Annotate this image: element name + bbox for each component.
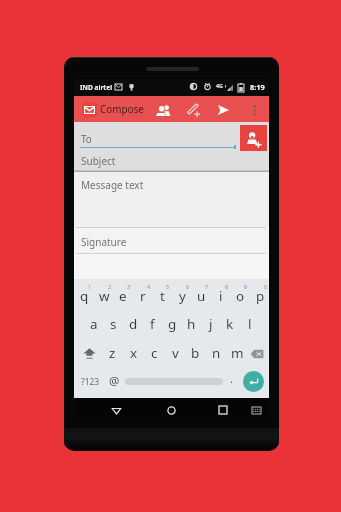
staticText: Message text [81,178,144,192]
button[interactable]: p [250,281,270,310]
button[interactable]: b [185,339,206,368]
staticText: d [129,315,138,333]
button[interactable]: o [230,281,250,310]
button[interactable]: More options [243,99,265,121]
button[interactable]: App icon [82,102,97,117]
button[interactable]: x [123,339,144,368]
button[interactable]: Shift [76,339,103,368]
button[interactable]: Attach [182,99,204,121]
button[interactable]: w [94,281,114,310]
button[interactable]: Recents [213,400,233,420]
staticText: 4 [147,283,151,290]
button[interactable]: @ [105,367,123,396]
button[interactable]: Back [106,400,126,420]
staticText: . [230,371,234,387]
staticText: To [81,132,92,146]
staticText: a [90,315,98,333]
staticText: t [160,287,165,305]
button[interactable]: i [211,281,231,310]
button[interactable]: l [240,310,260,339]
staticText: x [130,344,138,362]
button[interactable]: q [74,281,94,310]
button[interactable]: m [227,339,248,368]
button[interactable]: Add contact [240,125,267,151]
staticText: 4G [216,82,223,89]
staticText: Subject [81,154,116,168]
staticText: 3 [127,283,131,290]
staticText: r [140,287,146,305]
button[interactable]: Backspace [244,339,270,368]
button[interactable]: k [220,310,240,339]
staticText: 9 [244,283,248,290]
staticText: h [187,315,196,333]
staticText: y [179,287,186,305]
staticText: ?123 [81,376,100,387]
staticText: u [197,287,206,305]
staticText: 8 [225,283,229,290]
staticText: j [209,315,213,333]
button[interactable]: g [162,310,182,339]
staticText: 0 [264,283,268,290]
staticText: m [231,344,244,362]
staticText: n [212,344,221,362]
button[interactable]: u [191,281,211,310]
staticText: 2 [108,283,112,290]
button[interactable]: Enter [238,367,269,396]
button[interactable]: Switch keyboard [246,400,266,420]
button[interactable]: Home [161,400,181,420]
button[interactable]: e [113,281,133,310]
button[interactable]: Space [122,367,225,396]
staticText: z [109,344,116,362]
staticText: 7 [205,283,209,290]
staticText: o [236,287,245,305]
button[interactable]: ?123 [75,367,105,396]
staticText: w [99,287,110,305]
staticText: 8:19 [250,82,265,92]
staticText: g [168,315,177,333]
staticText: s [110,315,117,333]
button[interactable]: r [133,281,153,310]
button[interactable]: Send [212,99,234,121]
button[interactable]: . [225,367,238,396]
staticText: i [219,287,223,305]
button[interactable]: c [144,339,165,368]
staticText: IND airtel [80,83,113,92]
button[interactable]: n [206,339,227,368]
staticText: l [248,315,252,333]
staticText: k [226,315,234,333]
staticText: q [80,287,89,305]
staticText: 5 [166,283,170,290]
staticText: 1 [88,283,92,290]
staticText: Compose [100,102,144,115]
button[interactable]: a [84,310,104,339]
staticText: f [150,315,155,333]
button[interactable]: f [142,310,162,339]
staticText: 6 [186,283,190,290]
staticText: Signature [81,235,127,249]
staticText: v [172,344,179,362]
button[interactable]: h [181,310,201,339]
button[interactable]: j [201,310,221,339]
button[interactable]: y [172,281,192,310]
button[interactable]: z [102,339,123,368]
button[interactable]: d [123,310,143,339]
staticText: e [119,287,127,305]
staticText: b [191,344,200,362]
staticText: @ [109,373,120,389]
button[interactable]: s [103,310,123,339]
button[interactable]: Contacts [152,99,174,121]
staticText: p [256,287,265,305]
staticText: c [151,344,158,362]
button[interactable]: v [165,339,186,368]
button[interactable]: t [152,281,172,310]
